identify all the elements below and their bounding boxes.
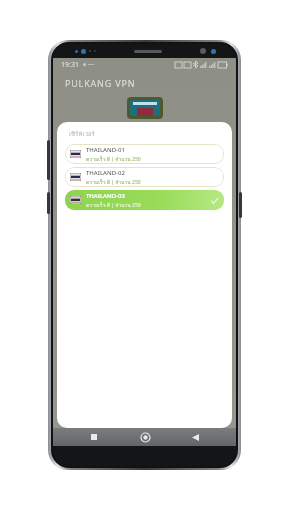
- button[interactable]: Home: [136, 428, 154, 446]
- button[interactable]: Recent apps: [85, 428, 103, 446]
- staticText: THAILAND-03: [86, 192, 125, 200]
- button[interactable]: Back: [186, 428, 204, 446]
- staticText: ความเร็ว ดี | จำนวน 250: [86, 178, 141, 186]
- button[interactable]: THAILAND-01: [65, 144, 224, 164]
- staticText: ความเร็ว ดี | จำนวน 250: [86, 155, 141, 163]
- staticText: THAILAND-01: [86, 146, 125, 154]
- staticText: PULKANG VPN: [65, 77, 136, 89]
- button[interactable]: THAILAND-02: [65, 167, 224, 187]
- staticText: 19:31: [61, 60, 79, 70]
- other: Selected: [210, 196, 219, 205]
- staticText: ความเร็ว ดี | จำนวน 250: [86, 201, 141, 209]
- staticText: เซิร์ฟเวอร์: [69, 129, 95, 139]
- staticText: THAILAND-02: [86, 169, 125, 177]
- button[interactable]: THAILAND-03: [65, 190, 224, 210]
